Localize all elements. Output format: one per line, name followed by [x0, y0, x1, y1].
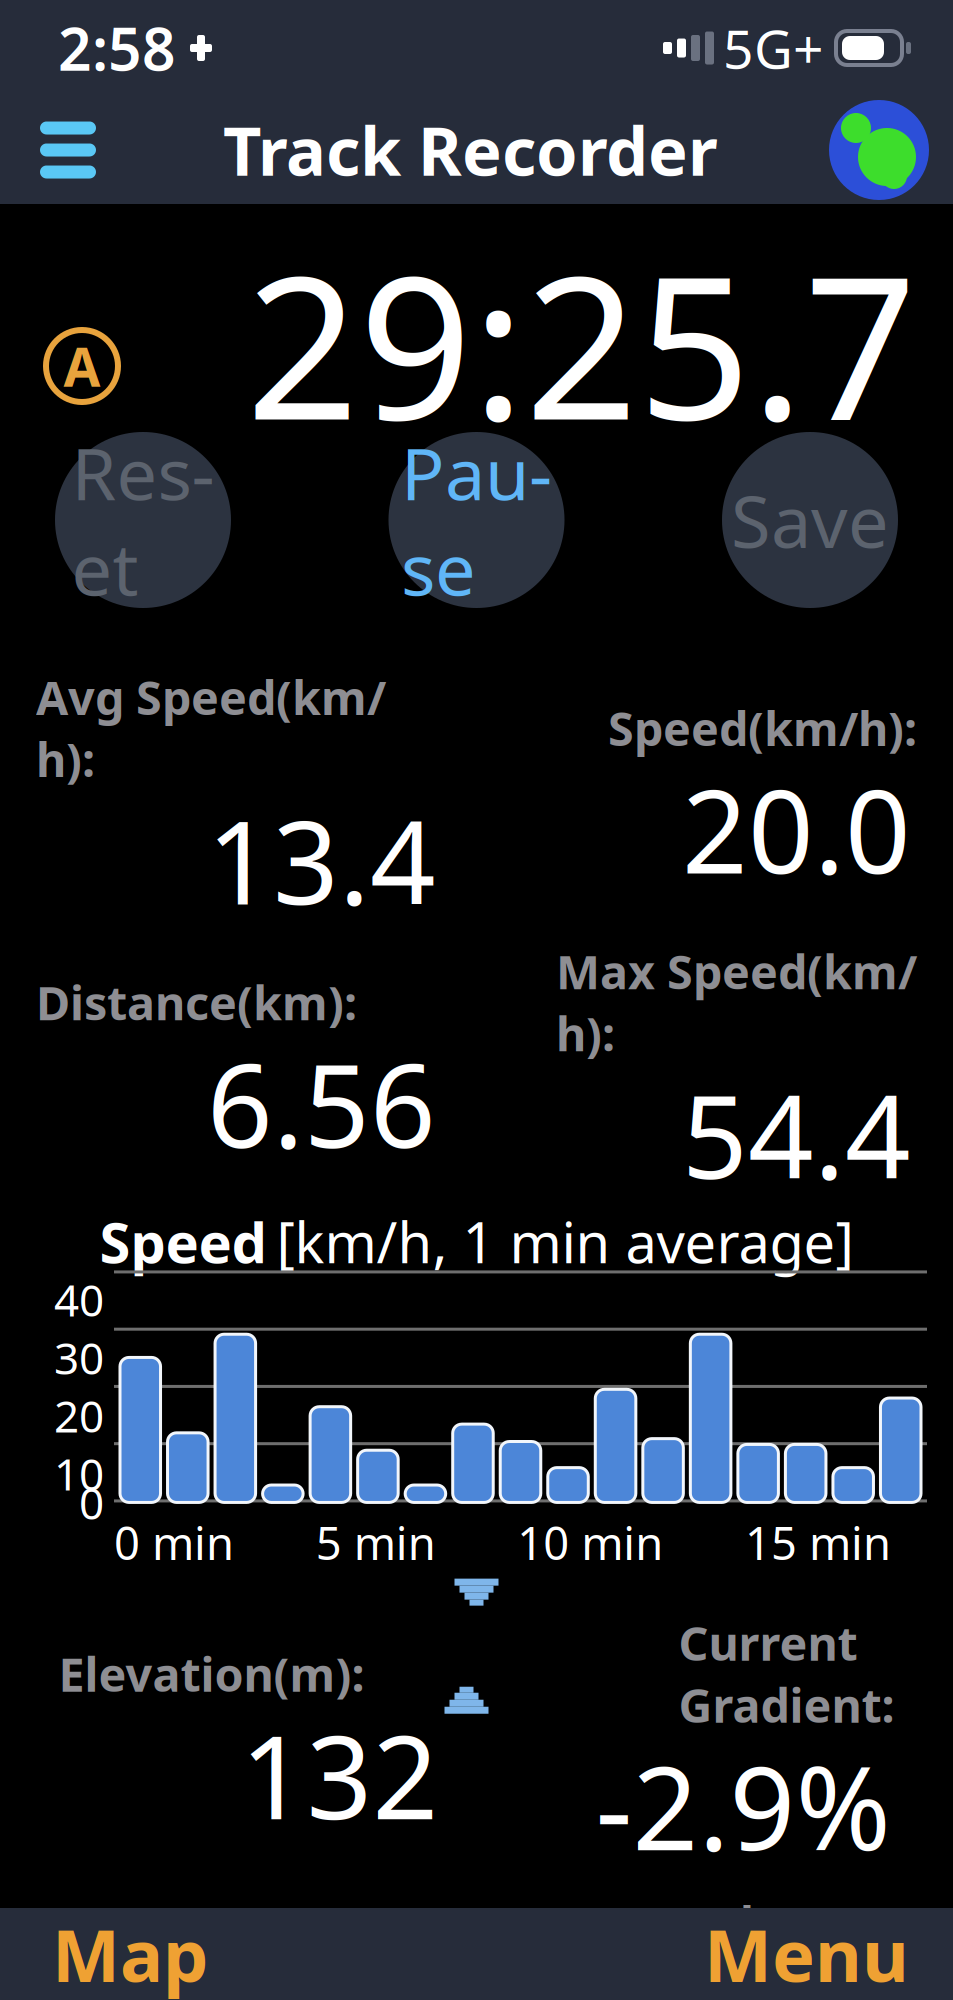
staticText: Current Gradient: [678, 1612, 894, 1735]
staticText: Save [731, 472, 889, 568]
staticText: 20.0 [682, 753, 911, 905]
staticText: Menu [704, 1906, 909, 2000]
staticText: Reset [71, 424, 214, 616]
staticText: Total Ascent(m): [36, 1923, 411, 1985]
staticText: 5G+ [723, 13, 824, 83]
staticText: 13.4 [207, 784, 436, 936]
staticText: A [63, 331, 100, 401]
button[interactable]: Menu [635, 1908, 953, 2000]
button[interactable]: Map [0, 1908, 318, 2000]
staticText: 132 [240, 1699, 438, 1851]
staticText: Max Speed(km/h): [556, 940, 917, 1064]
staticText: Avg Speed(km/h): [36, 666, 386, 790]
staticText: Elevation(m): [58, 1643, 364, 1705]
staticText: 30 [54, 1328, 104, 1387]
button[interactable]: Menu [22, 104, 114, 196]
staticText: Distance(km): [36, 971, 357, 1033]
staticText: Total Descent(m): [639, 1892, 917, 2000]
button[interactable]: Globe [827, 98, 931, 202]
staticText: 6.56 [207, 1027, 436, 1179]
staticText: [km/h, 1 min average] [276, 1204, 853, 1279]
staticText: 20 [54, 1386, 104, 1445]
staticText: Pause [401, 424, 552, 616]
button[interactable]: Reset [55, 432, 231, 608]
staticText: 0 [79, 1473, 104, 1532]
staticText: 2:58 [58, 9, 176, 87]
staticText: 29:25.7 [246, 212, 917, 474]
staticText: 10 [54, 1444, 104, 1503]
button[interactable]: Pause [388, 432, 564, 608]
staticText: 10 min [517, 1512, 663, 1573]
staticText: Speed [99, 1204, 266, 1279]
staticText: Map [52, 1906, 209, 2000]
staticText: 0 min [114, 1512, 234, 1573]
staticText: Speed(km/h): [608, 697, 917, 759]
staticText: -2.9% [595, 1730, 890, 1882]
staticText: 40 [54, 1270, 104, 1329]
staticText: Track Recorder [223, 106, 718, 194]
staticText: 54.4 [682, 1058, 911, 1210]
staticText: 5 min [316, 1512, 436, 1573]
button[interactable]: Save [722, 432, 898, 608]
staticText: 15 min [745, 1512, 891, 1573]
